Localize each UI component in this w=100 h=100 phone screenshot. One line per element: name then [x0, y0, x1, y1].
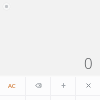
button[interactable]: Plus — [51, 77, 75, 95]
button[interactable]: Backspace — [26, 77, 50, 95]
button[interactable]: Multiply — [76, 77, 100, 95]
staticText: 0 — [84, 53, 93, 73]
button[interactable]: AC — [0, 77, 25, 95]
button[interactable]: Close — [2, 2, 11, 11]
staticText: AC — [8, 82, 16, 90]
